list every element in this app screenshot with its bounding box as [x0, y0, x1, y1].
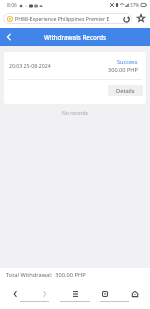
button[interactable]: Back: [0, 28, 18, 46]
button[interactable]: Reload page: [122, 15, 130, 23]
staticText: 37%: [130, 2, 140, 8]
staticText: Success: [117, 58, 138, 66]
staticText: 8:06: [7, 2, 17, 9]
button[interactable]: Forward: [30, 287, 60, 301]
staticText: 20:03 25-08-2024: [9, 62, 51, 69]
button[interactable]: PH88-Experience Philippines Premier E: [3, 13, 132, 24]
button[interactable]: Details: [108, 85, 143, 96]
staticText: Withdrawals Records: [44, 33, 107, 41]
staticText: Total Withdrawal: 300.00 PHP: [6, 271, 86, 279]
staticText: PH88-Experience Philippines Premier E: [15, 15, 121, 22]
button[interactable]: 20:03 25-08-2024: [4, 52, 146, 104]
staticText: 300.00 PHP: [108, 66, 138, 74]
button[interactable]: Bookmark: [135, 12, 147, 24]
button[interactable]: Home: [120, 287, 150, 301]
staticText: Details: [116, 87, 135, 95]
button[interactable]: Menu: [60, 287, 90, 301]
staticText: No records: [0, 110, 150, 117]
button[interactable]: Back: [0, 287, 30, 301]
button[interactable]: Tabs: [90, 287, 120, 301]
